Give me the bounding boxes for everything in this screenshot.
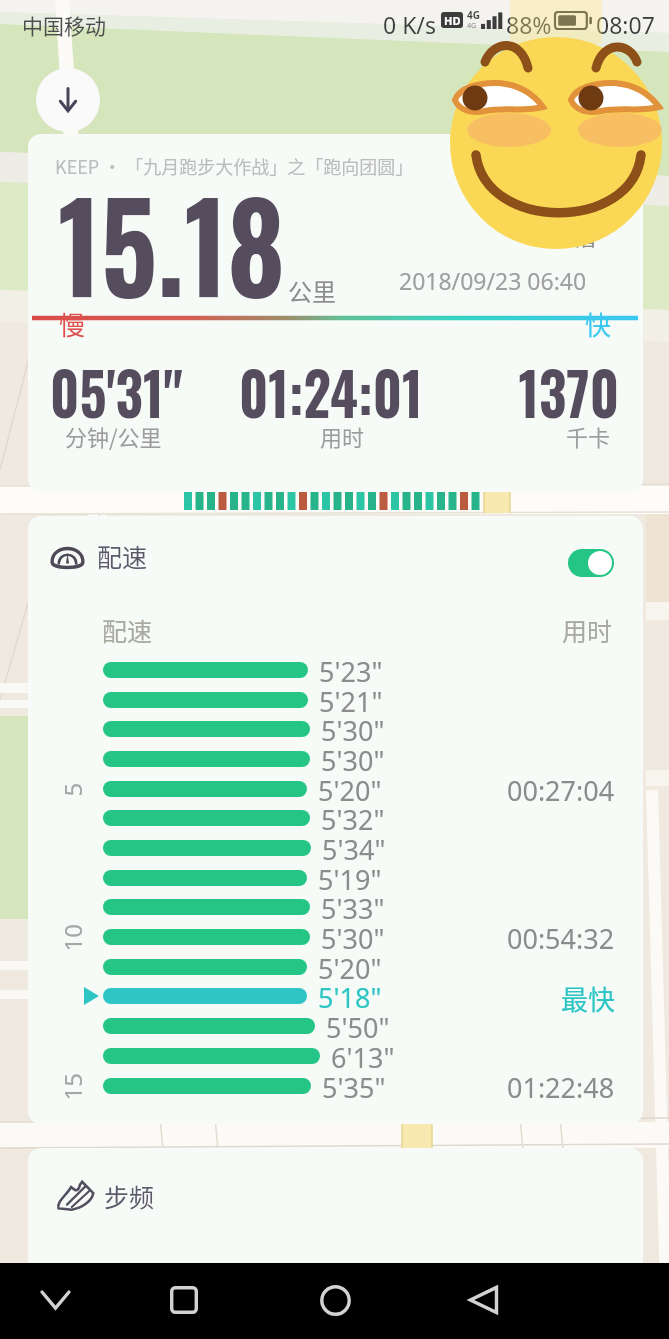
staticText: 4G: [467, 8, 480, 22]
staticText: 01:24:01: [239, 348, 423, 435]
staticText: 5'23": [319, 653, 383, 687]
button[interactable]: Download: [36, 68, 100, 132]
staticText: 5'20": [318, 950, 382, 984]
staticText: 5'19": [318, 861, 382, 895]
staticText: 5'33": [321, 890, 385, 924]
staticText: 公里: [288, 273, 336, 308]
staticText: 平均步频: [288, 1270, 384, 1305]
staticText: 5: [55, 782, 88, 796]
button[interactable]: 配速: [50, 534, 270, 578]
staticText: 5'18": [318, 979, 382, 1013]
staticText: 5'21": [319, 683, 383, 717]
staticText: 步频: [104, 1178, 155, 1214]
staticText: 15: [55, 1072, 88, 1100]
staticText: 分钟/公里: [65, 420, 162, 452]
staticText: 最快: [561, 979, 615, 1013]
staticText: KEEP · 「九月跑步大作战」之「跑向团圆」: [55, 153, 414, 179]
button[interactable]: Toggle pace chart: [568, 549, 614, 577]
staticText: 1370: [518, 348, 619, 435]
staticText: 10: [55, 923, 88, 951]
staticText: 中国移动: [22, 10, 106, 40]
staticText: 15.18: [58, 150, 286, 332]
staticText: 0 K/s: [383, 9, 436, 40]
staticText: 配速: [102, 612, 153, 648]
staticText: 08:07: [596, 9, 655, 40]
staticText: 2018/09/23 06:40: [399, 265, 587, 296]
staticText: 5'50": [326, 1009, 390, 1043]
other: Cadence: [57, 1180, 94, 1210]
staticText: 用时: [320, 420, 365, 452]
staticText: 01:22:48: [507, 1069, 615, 1103]
staticText: 5'35": [322, 1069, 386, 1103]
staticText: 5'30": [321, 712, 385, 746]
staticText: 配速: [97, 538, 148, 574]
button[interactable]: Hide keyboard: [17, 1263, 93, 1339]
staticText: 88%: [506, 9, 552, 40]
staticText: 05'31": [50, 348, 183, 435]
staticText: 滑稽: [548, 217, 596, 252]
staticText: 5'32": [321, 801, 385, 835]
staticText: 00:54:32: [507, 920, 615, 954]
staticText: 快: [585, 305, 612, 343]
staticText: 4G: [467, 21, 477, 31]
button[interactable]: Home: [297, 1263, 373, 1339]
staticText: 5'30": [321, 742, 385, 776]
button[interactable]: KEEP · 「九月跑步大作战」之「跑向团圆」: [28, 134, 643, 492]
staticText: 5'30": [321, 920, 385, 954]
staticText: HD: [444, 13, 461, 28]
button[interactable]: Back: [445, 1263, 521, 1339]
button[interactable]: Recent apps: [146, 1263, 222, 1339]
staticText: 00:27:04: [507, 772, 615, 806]
staticText: 6'13": [331, 1039, 395, 1073]
staticText: 5'34": [322, 831, 386, 865]
staticText: 慢: [59, 305, 86, 343]
staticText: 用时: [562, 612, 613, 648]
staticText: 5'20": [318, 772, 382, 806]
staticText: 千卡: [566, 420, 611, 452]
